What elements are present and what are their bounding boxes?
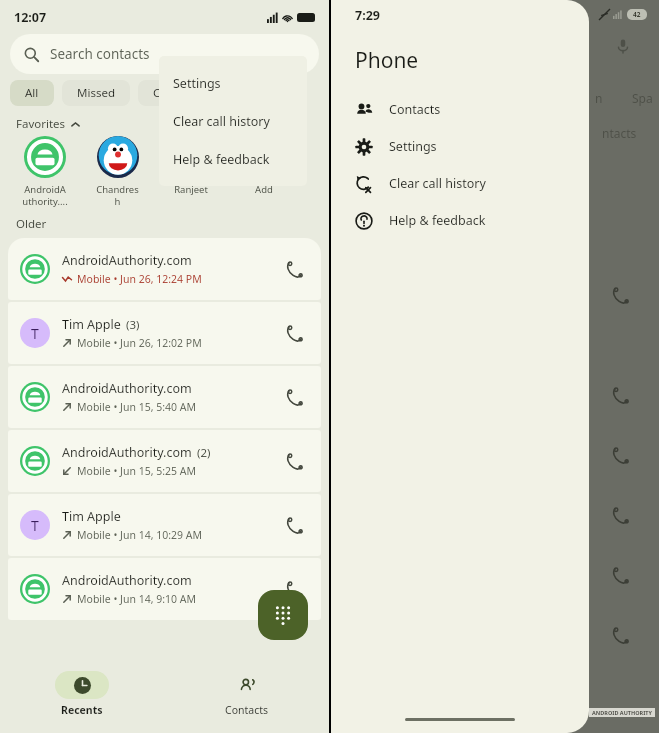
button[interactable]: Settings xyxy=(331,128,589,165)
staticText: Tim Apple xyxy=(62,508,121,525)
staticText: Help & feedback xyxy=(173,151,270,168)
staticText: Mobile • Jun 26, 12:02 PM xyxy=(77,336,202,350)
staticText: Mobile • Jun 15, 5:25 AM xyxy=(77,464,197,478)
staticText: Mobile • Jun 15, 5:40 AM xyxy=(77,400,197,414)
button[interactable]: AndroidAuthority.com xyxy=(8,430,321,492)
staticText: Recents xyxy=(61,703,103,717)
staticText: Spa xyxy=(632,90,653,106)
staticText: 12:07 xyxy=(14,9,47,26)
button[interactable]: T xyxy=(8,302,321,364)
button[interactable]: Favorites xyxy=(16,116,80,132)
staticText: ANDROID AUTHORITY xyxy=(592,709,652,716)
button[interactable]: T xyxy=(8,494,321,556)
button[interactable]: AndroidAuthority.com xyxy=(8,558,321,620)
button[interactable]: Contacts xyxy=(164,661,329,717)
button[interactable]: Call AndroidAuthority.com xyxy=(279,382,309,412)
button[interactable]: Ranjeet xyxy=(154,136,227,196)
staticText: Contacts xyxy=(225,703,269,717)
staticText: AndroidAuthority.com xyxy=(62,572,192,589)
button[interactable]: Call Tim Apple xyxy=(279,510,309,540)
button[interactable]: Contacts xyxy=(331,91,589,128)
button[interactable]: Add xyxy=(227,136,300,196)
staticText: Phone xyxy=(355,46,419,75)
staticText: Mobile • Jun 26, 12:24 PM xyxy=(77,272,202,286)
button[interactable]: Clear call history xyxy=(331,165,589,202)
button[interactable]: Chandres h xyxy=(81,136,154,208)
button[interactable]: AndroidAuthority.com xyxy=(8,366,321,428)
staticText: (3) xyxy=(126,317,140,333)
staticText: Settings xyxy=(173,75,221,92)
staticText: AndroidAuthority.com xyxy=(62,444,192,461)
staticText: T xyxy=(31,516,39,535)
button[interactable]: Settings xyxy=(159,64,307,102)
staticText: Settings xyxy=(389,138,437,155)
staticText: (2) xyxy=(197,445,211,461)
staticText: T xyxy=(31,324,39,343)
button[interactable]: All xyxy=(10,80,54,106)
staticText: ntacts xyxy=(602,125,637,141)
staticText: Ranjeet xyxy=(174,183,208,196)
button[interactable]: Call Tim Apple xyxy=(279,318,309,348)
button[interactable]: Call AndroidAuthority.com xyxy=(279,254,309,284)
staticText: Contacts xyxy=(389,101,441,118)
staticText: Chandres h xyxy=(96,183,139,208)
staticText: Tim Apple xyxy=(62,316,121,333)
staticText: Clear call history xyxy=(173,113,270,130)
button[interactable]: Search contacts xyxy=(10,34,319,74)
staticText: 7:29 xyxy=(355,7,380,24)
button[interactable]: Missed xyxy=(62,80,130,106)
staticText: AndroidA uthority.... xyxy=(22,183,68,208)
button[interactable]: Recents xyxy=(0,661,164,717)
staticText: Clear call history xyxy=(389,175,486,192)
staticText: Mobile • Jun 14, 9:10 AM xyxy=(77,592,197,606)
staticText: AndroidAuthority.com xyxy=(62,380,192,397)
button[interactable]: Dialpad xyxy=(258,590,308,640)
button[interactable]: Contacts xyxy=(138,80,216,106)
button[interactable]: AndroidAuthority.com xyxy=(8,238,321,300)
button[interactable]: Help & feedback xyxy=(331,202,589,239)
staticText: Contacts xyxy=(153,85,201,101)
staticText: Missed xyxy=(77,85,115,101)
staticText: Mobile • Jun 14, 10:29 AM xyxy=(77,528,203,542)
staticText: Search contacts xyxy=(50,45,150,63)
button[interactable]: Call AndroidAuthority.com xyxy=(279,446,309,476)
button[interactable]: AndroidA uthority.... xyxy=(8,136,81,208)
staticText: 42 xyxy=(633,10,641,19)
staticText: AndroidAuthority.com xyxy=(62,252,192,269)
button[interactable]: Help & feedback xyxy=(159,140,307,178)
staticText: Older xyxy=(16,216,47,232)
staticText: Favorites xyxy=(16,116,66,132)
button[interactable]: Call AndroidAuthority.com xyxy=(279,574,309,604)
staticText: Help & feedback xyxy=(389,212,486,229)
staticText: n xyxy=(595,90,603,106)
staticText: Add xyxy=(255,183,273,196)
staticText: All xyxy=(25,85,39,101)
button[interactable]: Clear call history xyxy=(159,102,307,140)
